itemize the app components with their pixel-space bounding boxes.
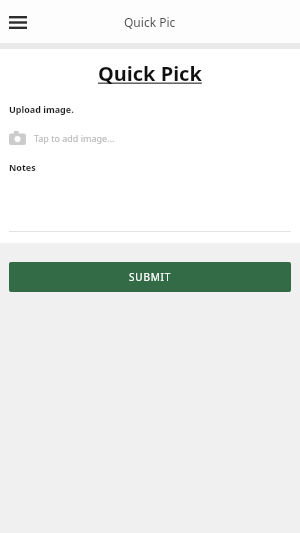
staticText: Quick Pick — [98, 60, 202, 87]
staticText: Notes — [9, 161, 36, 173]
staticText: Upload image. — [9, 103, 74, 115]
button[interactable]: Open navigation menu — [4, 8, 32, 36]
button[interactable]: Tap to add image... — [0, 127, 300, 149]
button[interactable]: SUBMIT — [9, 262, 291, 292]
staticText: Tap to add image... — [34, 132, 115, 144]
staticText: Quick Pic — [124, 14, 176, 30]
staticText: SUBMIT — [129, 270, 172, 284]
